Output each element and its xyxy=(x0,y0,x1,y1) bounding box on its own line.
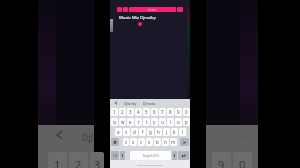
button[interactable]: Search xyxy=(177,7,183,12)
button[interactable]: t xyxy=(143,118,150,126)
button[interactable]: 1 xyxy=(111,108,118,116)
button[interactable]: f xyxy=(139,128,146,136)
button[interactable]: g xyxy=(147,128,154,136)
staticText: 9 xyxy=(177,109,180,115)
button[interactable]: c xyxy=(138,138,145,146)
staticText: English (US) xyxy=(143,154,159,158)
staticText: 0 xyxy=(239,157,246,168)
staticText: h xyxy=(157,129,160,135)
button[interactable]: w xyxy=(119,118,126,126)
staticText: o xyxy=(177,119,180,125)
staticText: c xyxy=(140,139,143,145)
button[interactable]: DjJ xyxy=(82,132,93,144)
staticText: v xyxy=(148,139,151,145)
staticText: 0 xyxy=(185,109,188,115)
staticText: q xyxy=(113,119,116,125)
button[interactable]: 5 xyxy=(143,108,150,116)
button[interactable]: m xyxy=(170,138,177,146)
button[interactable]: Djkotky xyxy=(124,101,137,106)
staticText: 2 xyxy=(75,157,82,168)
button[interactable]: 123 xyxy=(111,151,119,160)
staticText: g xyxy=(149,129,152,135)
staticText: p xyxy=(185,119,188,125)
button[interactable]: Return xyxy=(178,151,189,160)
button[interactable]: Shift xyxy=(111,138,119,146)
button[interactable]: k xyxy=(171,128,178,136)
staticText: 1 xyxy=(54,157,61,168)
staticText: 8 xyxy=(169,109,172,115)
staticText: f xyxy=(142,129,144,135)
button[interactable]: 1 xyxy=(48,152,67,168)
button[interactable]: i xyxy=(167,118,174,126)
button[interactable]: 3 xyxy=(90,152,104,168)
staticText: 7 xyxy=(161,109,164,115)
button[interactable]: 3 xyxy=(127,108,134,116)
button[interactable]: Djmosk xyxy=(143,101,156,106)
button[interactable]: y xyxy=(151,118,158,126)
button[interactable]: Voice input xyxy=(172,151,177,160)
other: Previous suggestions xyxy=(114,101,118,105)
button[interactable]: Menu xyxy=(117,7,122,12)
staticText: d xyxy=(133,129,136,135)
button[interactable]: r xyxy=(135,118,142,126)
staticText: l xyxy=(182,129,184,135)
button[interactable]: Music Mix Djnotky xyxy=(119,15,156,21)
button[interactable]: a xyxy=(115,128,122,136)
staticText: 3 xyxy=(94,157,101,168)
staticText: 4 xyxy=(137,109,140,115)
staticText: 1 xyxy=(113,109,116,115)
button[interactable]: n xyxy=(162,138,169,146)
button[interactable]: Emoji xyxy=(120,151,125,160)
button[interactable]: 6 xyxy=(151,108,158,116)
button[interactable]: 2 xyxy=(119,108,126,116)
staticText: j xyxy=(166,129,168,135)
staticText: i xyxy=(170,119,172,125)
staticText: 5 xyxy=(145,109,148,115)
button[interactable]: Library xyxy=(123,7,128,12)
button[interactable]: English (US) xyxy=(130,151,171,160)
staticText: r xyxy=(138,119,140,125)
staticText: u xyxy=(161,119,164,125)
staticText: 123 xyxy=(113,154,118,158)
staticText: 2 xyxy=(121,109,124,115)
button[interactable]: Delete xyxy=(180,138,189,146)
staticText: Listen xyxy=(148,8,157,12)
button[interactable]: b xyxy=(154,138,161,146)
button[interactable]: q xyxy=(111,118,118,126)
button[interactable]: d xyxy=(131,128,138,136)
button[interactable]: v xyxy=(146,138,153,146)
staticText: b xyxy=(156,139,159,145)
staticText: z xyxy=(125,139,128,145)
button[interactable]: p xyxy=(183,118,190,126)
button[interactable]: o xyxy=(175,118,182,126)
staticText: 6 xyxy=(153,109,156,115)
staticText: e xyxy=(129,119,132,125)
button[interactable]: x xyxy=(130,138,137,146)
staticText: 9 xyxy=(218,157,225,168)
staticText: x xyxy=(132,139,135,145)
button[interactable]: 4 xyxy=(135,108,142,116)
button[interactable]: z xyxy=(123,138,129,146)
staticText: n xyxy=(164,139,167,145)
button[interactable]: l xyxy=(179,128,186,136)
staticText: m xyxy=(171,139,176,145)
staticText: 3 xyxy=(129,109,132,115)
button[interactable]: Listen xyxy=(129,7,176,12)
button[interactable]: e xyxy=(127,118,134,126)
button[interactable]: 9 xyxy=(175,108,182,116)
button[interactable]: 0 xyxy=(233,152,252,168)
staticText: t xyxy=(146,119,148,125)
staticText: w xyxy=(121,119,125,125)
other: Back xyxy=(54,130,64,140)
staticText: k xyxy=(173,129,176,135)
button[interactable]: u xyxy=(159,118,166,126)
button[interactable]: j xyxy=(163,128,170,136)
button[interactable]: 7 xyxy=(159,108,166,116)
button[interactable]: 8 xyxy=(167,108,174,116)
button[interactable]: 9 xyxy=(212,152,231,168)
button[interactable]: h xyxy=(155,128,162,136)
button[interactable]: 2 xyxy=(69,152,88,168)
button[interactable]: s xyxy=(123,128,130,136)
button[interactable]: 0 xyxy=(183,108,190,116)
